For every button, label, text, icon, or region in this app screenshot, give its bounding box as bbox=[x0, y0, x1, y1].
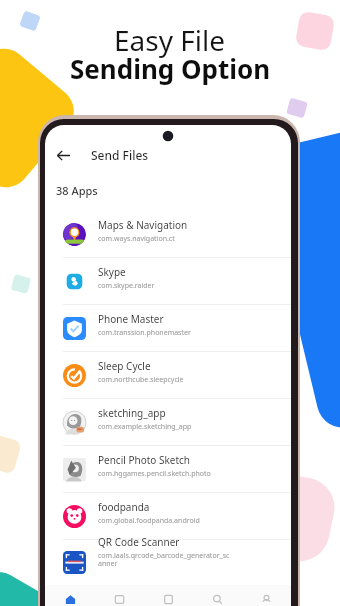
button[interactable]: Send bbox=[45, 585, 95, 606]
button[interactable]: Pencil Photo Sketch bbox=[45, 446, 291, 492]
staticText: sketching_app bbox=[98, 406, 166, 420]
staticText: com.iaals.qrcode_barcode_generator_sc an… bbox=[98, 551, 230, 568]
staticText: foodpanda bbox=[98, 500, 150, 514]
button[interactable]: Receive bbox=[95, 585, 144, 606]
button[interactable]: Back bbox=[51, 143, 76, 168]
staticText: Sending Option bbox=[70, 51, 271, 86]
staticText: QR Code Scanner bbox=[98, 535, 180, 549]
staticText: com.ways.navigation.ct bbox=[98, 234, 175, 244]
staticText: com.hggames.pencil.sketch.photo bbox=[98, 469, 211, 479]
staticText: Send Files bbox=[91, 147, 149, 163]
staticText: com.example.sketching_app bbox=[98, 422, 192, 432]
staticText: Phone Master bbox=[98, 312, 164, 326]
button[interactable]: sketching_app bbox=[45, 399, 291, 445]
staticText: Sleep Cycle bbox=[98, 359, 151, 373]
staticText: Pencil Photo Sketch bbox=[98, 453, 191, 467]
button[interactable]: Me bbox=[242, 585, 291, 606]
staticText: Skype bbox=[98, 265, 126, 279]
button[interactable]: Sleep Cycle bbox=[45, 352, 291, 398]
button[interactable]: Phone Master bbox=[45, 305, 291, 351]
button[interactable]: History bbox=[144, 585, 193, 606]
staticText: com.skype.raider bbox=[98, 281, 155, 291]
staticText: 38 Apps bbox=[56, 183, 98, 198]
button[interactable]: Maps & Navigation bbox=[45, 211, 291, 257]
staticText: com.northcube.sleepcycle bbox=[98, 375, 184, 385]
button[interactable]: Search bbox=[193, 585, 242, 606]
staticText: Easy File bbox=[114, 21, 226, 59]
button[interactable]: QR Code Scanner bbox=[45, 540, 291, 585]
button[interactable]: foodpanda bbox=[45, 493, 291, 539]
staticText: com.global.foodpanda.android bbox=[98, 516, 200, 526]
staticText: Maps & Navigation bbox=[98, 218, 188, 232]
button[interactable]: Skype bbox=[45, 258, 291, 304]
staticText: com.transsion.phonemaster bbox=[98, 328, 191, 338]
